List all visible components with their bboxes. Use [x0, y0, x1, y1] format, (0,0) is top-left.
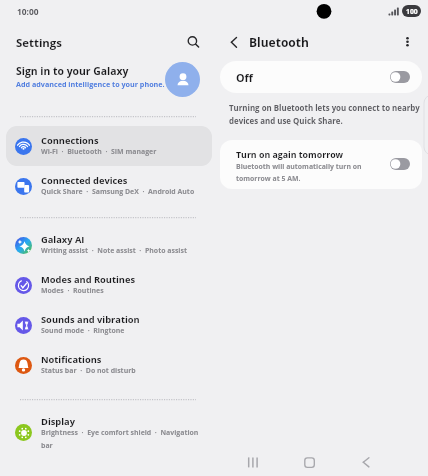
- staticText: Sounds and vibration: [41, 313, 140, 326]
- button[interactable]: Connections: [0, 126, 214, 166]
- staticText: Status bar · Do not disturb: [41, 366, 136, 375]
- staticText: Modes and Routines: [41, 273, 136, 286]
- staticText: Turn on again tomorrow: [236, 149, 344, 161]
- staticText: Bluetooth will automatically turn on tom…: [236, 162, 369, 183]
- button[interactable]: Sounds and vibration: [0, 305, 214, 345]
- staticText: Writing assist · Note assist · Photo ass…: [41, 246, 187, 255]
- staticText: Wi-Fi · Bluetooth · SIM manager: [41, 147, 157, 156]
- button[interactable]: Display: [0, 410, 214, 456]
- button[interactable]: Off: [220, 61, 422, 93]
- button[interactable]: Sign in to your Galaxy: [0, 62, 214, 98]
- button[interactable]: Toggle: [390, 158, 410, 170]
- staticText: Connected devices: [41, 174, 128, 187]
- button[interactable]: Search: [182, 30, 203, 51]
- staticText: Bluetooth: [249, 34, 309, 50]
- staticText: Settings: [16, 35, 62, 51]
- staticText: 100: [406, 7, 418, 16]
- staticText: Sign in to your Galaxy: [16, 64, 129, 78]
- button[interactable]: Connected devices: [0, 166, 214, 206]
- staticText: Display: [41, 415, 75, 428]
- staticText: Add advanced intelligence to your phone.: [16, 79, 165, 89]
- button[interactable]: Back: [351, 450, 375, 474]
- button[interactable]: More options: [397, 30, 418, 51]
- button[interactable]: Notifications: [0, 345, 214, 385]
- button[interactable]: Home: [297, 450, 321, 474]
- staticText: Connections: [41, 134, 99, 147]
- staticText: 10:00: [17, 6, 39, 17]
- button[interactable]: Toggle: [390, 71, 410, 83]
- staticText: Notifications: [41, 353, 102, 366]
- staticText: Quick Share · Samsung DeX · Android Auto: [41, 187, 195, 196]
- staticText: Modes · Routines: [41, 286, 104, 295]
- button[interactable]: Recent apps: [241, 450, 265, 474]
- staticText: Sound mode · Ringtone: [41, 326, 125, 335]
- button[interactable]: Modes and Routines: [0, 265, 214, 305]
- button[interactable]: Turn on again tomorrow: [220, 140, 422, 189]
- staticText: Galaxy AI: [41, 233, 85, 246]
- staticText: Off: [236, 70, 253, 85]
- staticText: Brightness · Eye comfort shield · Naviga…: [41, 428, 201, 450]
- button[interactable]: Back: [221, 31, 243, 53]
- staticText: Turning on Bluetooth lets you connect to…: [229, 103, 425, 126]
- button[interactable]: Galaxy AI: [0, 225, 214, 265]
